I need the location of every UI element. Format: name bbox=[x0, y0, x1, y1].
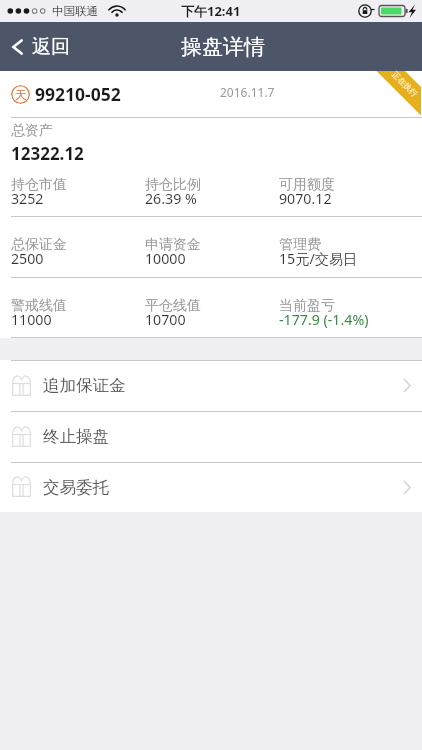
staticText: 2500 bbox=[11, 249, 44, 268]
staticText: 可用额度 bbox=[279, 176, 335, 194]
staticText: 返回 bbox=[32, 35, 70, 59]
staticText: 9070.12 bbox=[279, 189, 332, 208]
staticText: 天 bbox=[15, 87, 27, 102]
button[interactable]: 终止操盘 bbox=[0, 411, 422, 462]
staticText: 操盘详情 bbox=[181, 34, 265, 60]
staticText: 3252 bbox=[11, 189, 44, 208]
staticText: 15元/交易日 bbox=[279, 249, 358, 268]
button[interactable]: 返回 bbox=[0, 27, 84, 67]
staticText: -177.9 (-1.4%) bbox=[279, 310, 369, 329]
staticText: 99210-052 bbox=[35, 82, 121, 106]
staticText: 追加保证金 bbox=[43, 375, 126, 396]
staticText: 持仓市值 bbox=[11, 176, 67, 194]
staticText: 总保证金 bbox=[11, 236, 67, 254]
staticText: 管理费 bbox=[279, 236, 321, 254]
staticText: 终止操盘 bbox=[43, 426, 109, 447]
staticText: 交易委托 bbox=[43, 477, 109, 498]
staticText: 平仓线值 bbox=[145, 297, 201, 315]
staticText: 2016.11.7 bbox=[220, 84, 275, 100]
staticText: 11000 bbox=[11, 310, 52, 329]
staticText: 中国联通 bbox=[52, 4, 98, 18]
button[interactable]: 追加保证金 bbox=[0, 360, 422, 411]
staticText: 当前盈亏 bbox=[279, 297, 335, 315]
staticText: 26.39 % bbox=[145, 189, 197, 208]
staticText: 正在执行 bbox=[390, 69, 420, 99]
staticText: 警戒线值 bbox=[11, 297, 67, 315]
staticText: 12322.12 bbox=[11, 142, 84, 165]
staticText: 持仓比例 bbox=[145, 176, 201, 194]
staticText: 下午12:41 bbox=[181, 2, 241, 20]
staticText: 申请资金 bbox=[145, 236, 201, 254]
staticText: 总资产 bbox=[11, 122, 53, 140]
staticText: 10000 bbox=[145, 249, 186, 268]
staticText: 10700 bbox=[145, 310, 186, 329]
button[interactable]: 交易委托 bbox=[0, 462, 422, 512]
